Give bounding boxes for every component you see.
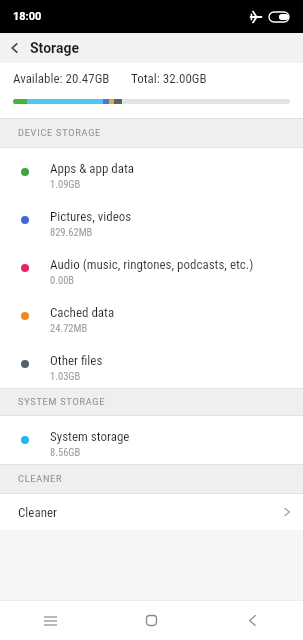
staticText: CLEANER: [18, 474, 63, 485]
staticText: Cached data: [50, 305, 115, 320]
button[interactable]: [101, 601, 202, 640]
staticText: Audio (music, ringtones, podcasts, etc.): [50, 257, 254, 272]
staticText: 829.62MB: [50, 226, 93, 238]
button[interactable]: Apps & app data: [0, 148, 303, 196]
button[interactable]: Storage: [0, 33, 90, 63]
button[interactable]: Cached data: [0, 292, 303, 340]
button[interactable]: [202, 601, 303, 640]
staticText: SYSTEM STORAGE: [18, 397, 106, 408]
staticText: Other files: [50, 353, 103, 368]
staticText: Available: 20.47GB: [13, 71, 110, 86]
staticText: Apps & app data: [50, 161, 135, 176]
staticText: 18:00: [13, 10, 42, 23]
staticText: 24.72MB: [50, 322, 88, 334]
button[interactable]: Audio (music, ringtones, podcasts, etc.): [0, 244, 303, 292]
staticText: 1.09GB: [50, 178, 81, 190]
staticText: 8.56GB: [50, 446, 81, 458]
staticText: 0.00B: [50, 274, 75, 286]
button[interactable]: [0, 601, 101, 640]
staticText: Pictures, videos: [50, 209, 132, 224]
button[interactable]: Pictures, videos: [0, 196, 303, 244]
staticText: 1.03GB: [50, 370, 81, 382]
button[interactable]: Cleaner: [0, 494, 303, 530]
staticText: Total: 32.00GB: [131, 71, 207, 86]
button[interactable]: System storage: [0, 416, 303, 464]
staticText: DEVICE STORAGE: [18, 128, 102, 139]
staticText: System storage: [50, 429, 130, 444]
button[interactable]: Other files: [0, 340, 303, 388]
staticText: Storage: [30, 40, 80, 56]
staticText: Cleaner: [18, 505, 58, 520]
